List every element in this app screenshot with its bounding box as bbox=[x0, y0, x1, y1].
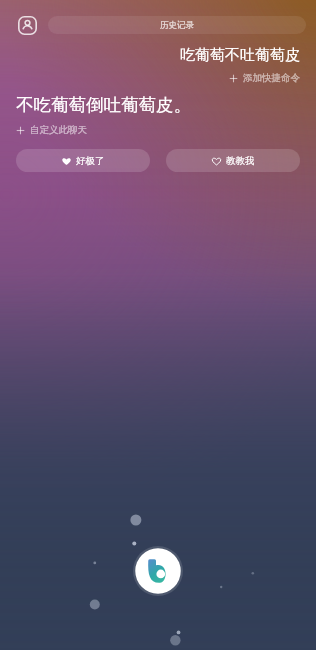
staticText: 好极了 bbox=[76, 155, 105, 167]
button[interactable]: 教教我 bbox=[166, 149, 300, 172]
button[interactable]: 添加快捷命令 bbox=[229, 72, 300, 84]
button[interactable]: 自定义此聊天 bbox=[16, 124, 87, 136]
button[interactable]: Profile bbox=[14, 12, 40, 38]
staticText: 教教我 bbox=[226, 155, 255, 167]
button[interactable]: Bixby bbox=[133, 546, 183, 596]
button[interactable]: 历史记录 bbox=[48, 16, 306, 34]
staticText: 添加快捷命令 bbox=[243, 72, 300, 84]
staticText: 吃葡萄不吐葡萄皮 bbox=[180, 46, 300, 65]
staticText: 不吃葡萄倒吐葡萄皮。 bbox=[16, 94, 191, 116]
button[interactable]: 好极了 bbox=[16, 149, 150, 172]
staticText: 历史记录 bbox=[160, 20, 194, 31]
staticText: 自定义此聊天 bbox=[30, 124, 87, 136]
